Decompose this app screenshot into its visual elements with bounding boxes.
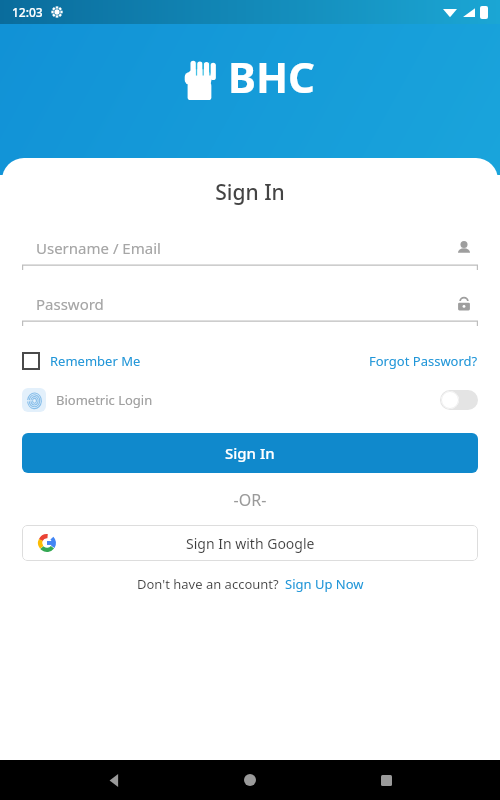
staticText: Remember Me — [50, 352, 141, 370]
staticText: Sign In with Google — [186, 534, 315, 553]
other: Biometric login toggle — [440, 390, 478, 410]
staticText: Don't have an account? — [137, 575, 279, 593]
other: Password — [456, 296, 472, 312]
staticText: Sign Up Now — [285, 575, 364, 593]
staticText: -OR- — [2, 489, 498, 511]
button[interactable]: Biometric Login — [22, 385, 478, 415]
button[interactable]: Forgot Password? — [369, 352, 478, 370]
staticText: Username / Email — [36, 238, 161, 258]
button[interactable]: Back — [92, 760, 136, 800]
staticText: Sign In — [2, 178, 498, 207]
button[interactable]: Sign In with Google — [22, 525, 478, 561]
staticText: Forgot Password? — [369, 352, 478, 370]
staticText: 12:03 — [12, 4, 43, 20]
button[interactable]: Home — [228, 760, 272, 800]
button[interactable]: Sign In — [22, 433, 478, 473]
button[interactable]: Password — [22, 289, 478, 325]
button[interactable]: Sign Up Now — [285, 575, 364, 593]
other: Username — [456, 240, 472, 256]
staticText: Password — [36, 294, 104, 314]
button[interactable]: Username / Email — [22, 233, 478, 269]
staticText: BHC — [228, 48, 316, 105]
staticText: Sign In — [225, 443, 275, 463]
staticText: Biometric Login — [56, 391, 153, 409]
button[interactable]: Recent apps — [364, 760, 408, 800]
button[interactable]: Remember Me — [22, 352, 141, 370]
